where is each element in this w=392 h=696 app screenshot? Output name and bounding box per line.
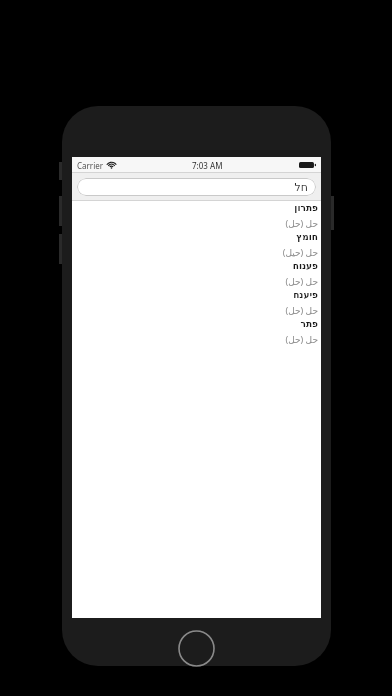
staticText: Carrier <box>77 160 104 171</box>
staticText: 7:03 AM <box>192 160 223 171</box>
button[interactable]: פתרון <box>72 201 321 230</box>
button[interactable]: חומץ <box>72 230 321 259</box>
staticText: حل (حل) <box>285 304 318 316</box>
staticText: חל <box>294 181 308 194</box>
staticText: פיענח <box>293 290 318 300</box>
button[interactable]: פענוח <box>72 259 321 288</box>
button[interactable]: פיענח <box>72 288 321 317</box>
button[interactable]: חל <box>77 178 316 196</box>
staticText: פתרון <box>294 203 318 213</box>
button[interactable]: פתר <box>72 317 321 346</box>
button[interactable]: Home <box>178 630 215 667</box>
staticText: חומץ <box>296 232 318 242</box>
staticText: حل (حل) <box>285 275 318 287</box>
staticText: حل (حيل) <box>282 246 318 258</box>
staticText: حل (حل) <box>285 333 318 345</box>
staticText: פענוח <box>292 261 318 271</box>
staticText: פתר <box>300 319 318 329</box>
staticText: حل (حل) <box>285 217 318 229</box>
